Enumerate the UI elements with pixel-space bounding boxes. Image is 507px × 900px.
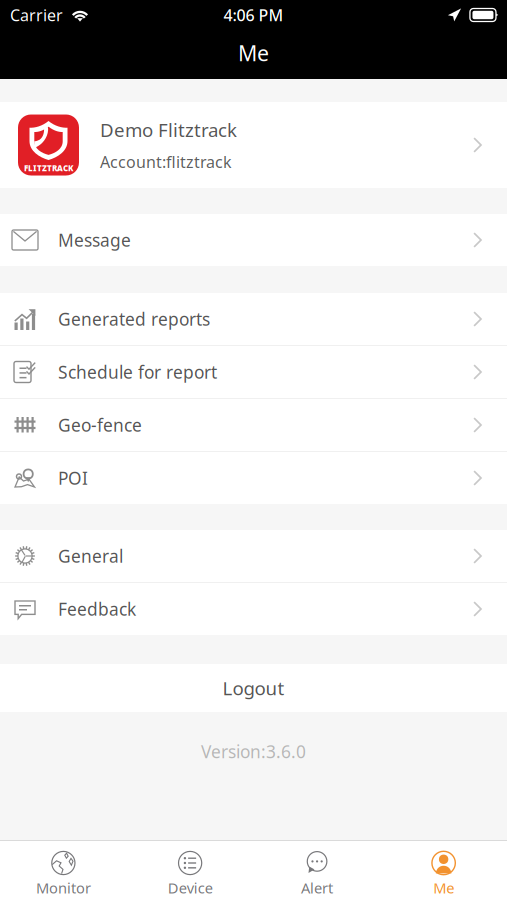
button[interactable]: Feedback xyxy=(0,583,507,635)
button[interactable]: Alert xyxy=(253,841,380,900)
staticText: Geo-fence xyxy=(58,413,142,436)
staticText: Message xyxy=(58,228,131,251)
staticText: POI xyxy=(58,466,88,489)
staticText: Logout xyxy=(222,676,284,700)
staticText: Version:3.6.0 xyxy=(201,740,306,763)
button[interactable]: Message xyxy=(0,214,507,266)
button[interactable]: Me xyxy=(380,841,507,900)
staticText: FLITZTRACK xyxy=(24,163,73,173)
button[interactable]: Generated reports xyxy=(0,293,507,345)
staticText: Alert xyxy=(301,878,333,897)
staticText: Monitor xyxy=(36,878,91,897)
staticText: General xyxy=(58,544,123,567)
staticText: Device xyxy=(168,878,213,897)
button[interactable]: General xyxy=(0,530,507,582)
staticText: Carrier xyxy=(10,4,63,26)
staticText: Demo Flitztrack xyxy=(100,117,237,142)
staticText: 4:06 PM xyxy=(223,4,283,26)
button[interactable]: Geo-fence xyxy=(0,399,507,451)
button[interactable]: Monitor xyxy=(0,841,127,900)
staticText: Schedule for report xyxy=(58,360,217,383)
staticText: Generated reports xyxy=(58,307,210,330)
button[interactable]: Schedule for report xyxy=(0,346,507,398)
button[interactable]: Device xyxy=(127,841,254,900)
staticText: Feedback xyxy=(58,597,136,620)
button[interactable]: Logout xyxy=(0,664,507,712)
staticText: Me xyxy=(433,878,454,897)
staticText: Me xyxy=(238,39,269,67)
staticText: Account:flitztrack xyxy=(100,151,232,172)
button[interactable]: POI xyxy=(0,452,507,504)
button[interactable]: FLITZTRACK xyxy=(0,102,507,188)
